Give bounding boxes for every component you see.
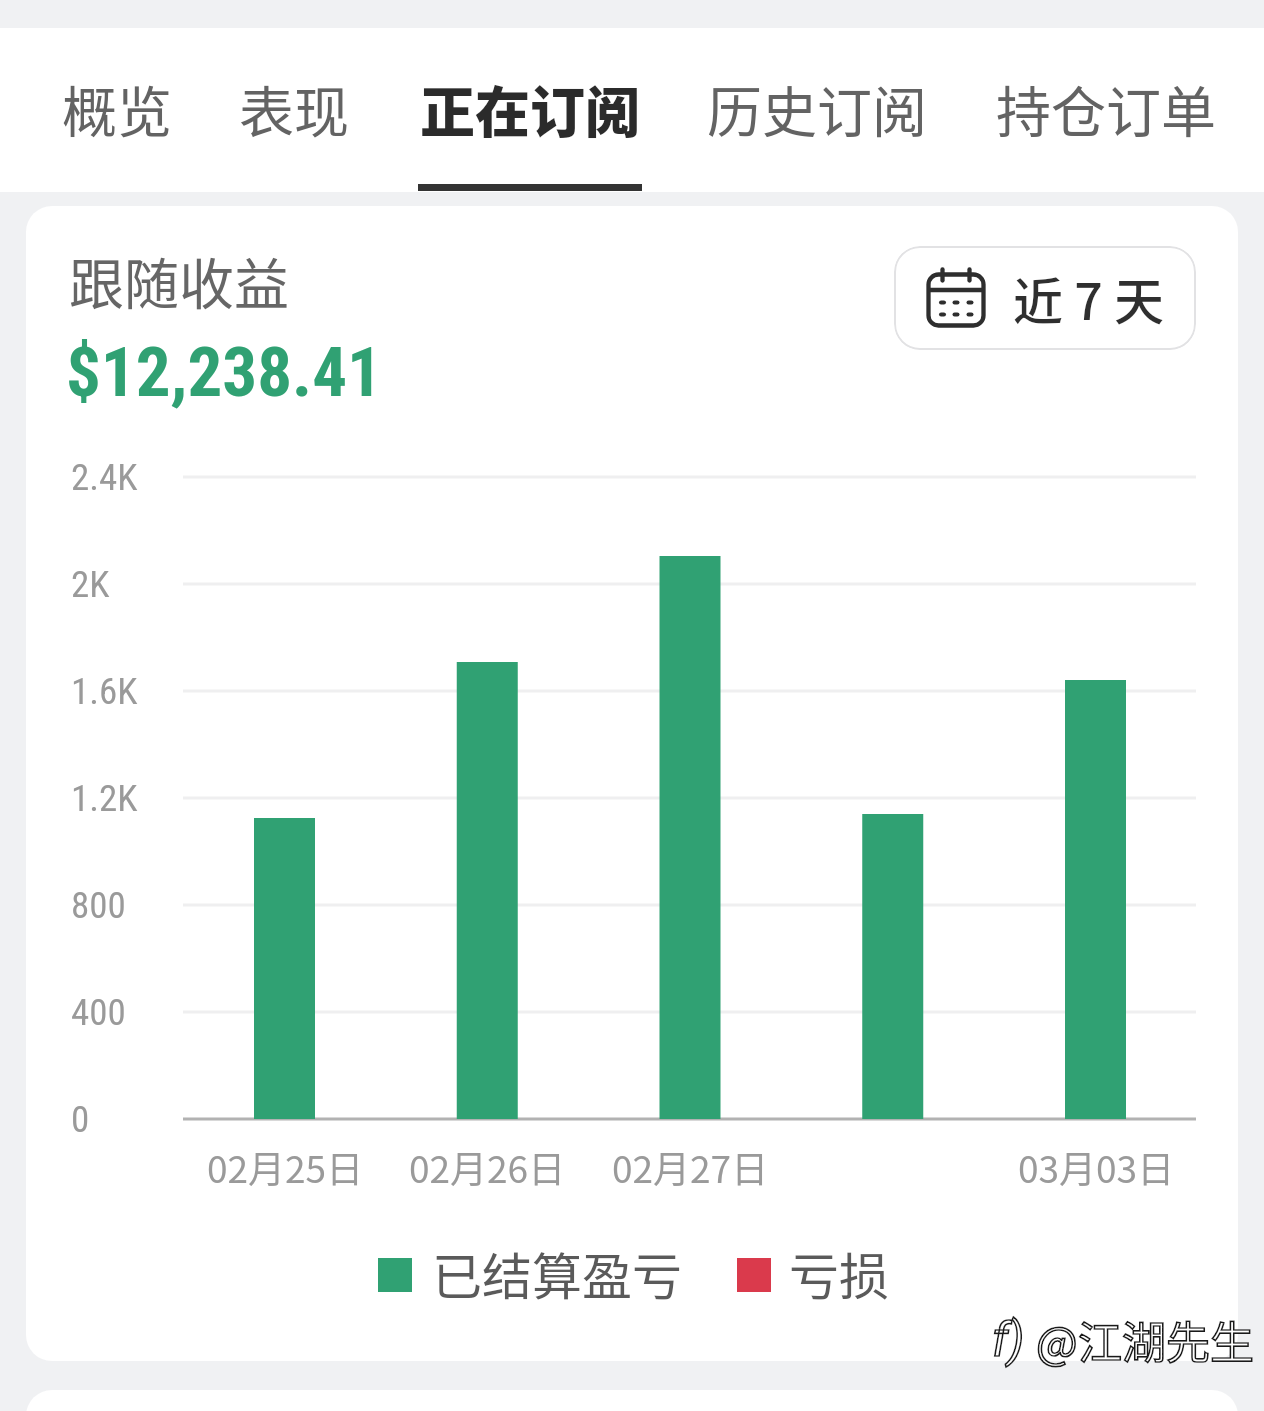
staticText: 800	[71, 884, 126, 927]
staticText: 正在订阅	[420, 68, 641, 148]
staticText: 近 7 天	[1013, 262, 1164, 334]
staticText: 亏损	[789, 1237, 889, 1309]
staticText: 03月03日	[1018, 1140, 1175, 1194]
button[interactable]: Select date range	[894, 246, 1196, 350]
staticText: 2.4K	[71, 456, 138, 499]
staticText: 2K	[71, 563, 110, 606]
staticText: 400	[71, 991, 126, 1034]
button[interactable]: 正在订阅	[394, 28, 666, 192]
staticText: 02月27日	[612, 1140, 769, 1194]
staticText: 表现	[239, 68, 350, 148]
staticText: 持仓订单	[996, 68, 1217, 148]
staticText: 1.2K	[71, 777, 138, 820]
button[interactable]: 概览	[31, 28, 203, 192]
staticText: 跟随收益	[69, 240, 290, 320]
button[interactable]: 历史订阅	[682, 28, 953, 192]
staticText: 02月25日	[207, 1140, 364, 1194]
staticText: 02月26日	[409, 1140, 566, 1194]
button[interactable]: 表现	[211, 28, 377, 192]
staticText: 0	[71, 1098, 90, 1141]
staticText: 1.6K	[71, 670, 138, 713]
staticText: 概览	[62, 68, 173, 148]
staticText: $12,238.41	[66, 332, 382, 413]
other: Select date range	[927, 269, 985, 327]
staticText: 已结算盈亏	[432, 1237, 682, 1309]
button[interactable]: 持仓订单	[969, 28, 1243, 192]
staticText: 历史订阅	[707, 68, 928, 148]
